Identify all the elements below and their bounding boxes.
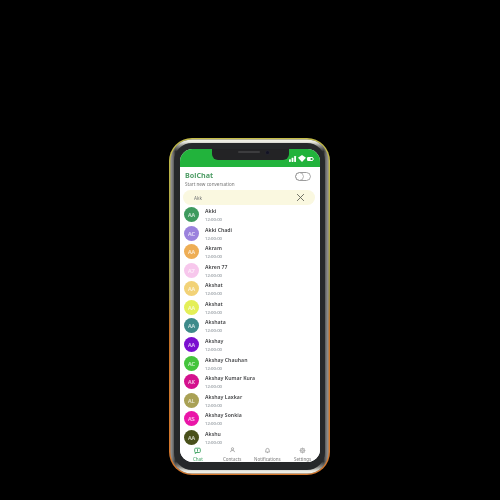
button[interactable]: AA <box>180 335 320 354</box>
button[interactable]: AC <box>180 224 320 243</box>
staticText: Akki Chadi <box>205 227 233 234</box>
button[interactable]: AA <box>180 316 320 335</box>
staticText: AL <box>188 397 195 405</box>
staticText: Contacts <box>223 456 242 462</box>
staticText: Akshay Laxkar <box>205 394 243 401</box>
staticText: Chat <box>193 456 203 462</box>
staticText: 12:00:00 <box>205 420 223 426</box>
button[interactable]: AK <box>180 372 320 391</box>
staticText: 12:00:00 <box>205 402 223 408</box>
staticText: Akshay Chauhan <box>205 357 248 364</box>
staticText: 12:00:00 <box>205 235 223 241</box>
staticText: Akki <box>205 208 217 215</box>
staticText: Akshay <box>205 338 224 345</box>
staticText: Akram <box>205 245 222 252</box>
button[interactable]: Akk <box>183 190 315 205</box>
staticText: 12:00:00 <box>205 253 223 259</box>
staticText: AA <box>188 211 196 219</box>
staticText: AK <box>188 378 196 386</box>
staticText: 12:00:00 <box>205 309 223 315</box>
staticText: 12:00:00 <box>205 439 223 445</box>
button[interactable]: AA <box>180 279 320 298</box>
staticText: Akshata <box>205 319 226 326</box>
staticText: AA <box>188 248 196 256</box>
staticText: Akk <box>194 195 202 201</box>
staticText: Akshay Sonkia <box>205 412 242 419</box>
button[interactable]: AS <box>180 409 320 428</box>
staticText: 12:00:00 <box>205 365 223 371</box>
staticText: AC <box>188 230 195 238</box>
staticText: Akren 77 <box>205 264 228 271</box>
button[interactable]: Contacts <box>215 445 250 462</box>
staticText: BolChat <box>185 170 214 180</box>
button[interactable]: Settings <box>285 445 320 462</box>
button[interactable]: Chat <box>180 445 215 462</box>
staticText: Notifications <box>254 456 281 462</box>
button[interactable]: Notifications <box>250 445 285 462</box>
staticText: 12:00:00 <box>205 327 223 333</box>
button[interactable]: Clear search <box>297 194 304 201</box>
staticText: Akshay Kumar Kura <box>205 375 256 382</box>
button[interactable]: AC <box>180 354 320 373</box>
button[interactable]: A7 <box>180 261 320 280</box>
button[interactable]: AA <box>180 205 320 224</box>
button[interactable]: AL <box>180 391 320 410</box>
staticText: 12:00:00 <box>205 216 223 222</box>
staticText: AA <box>188 341 196 349</box>
staticText: Start new conversation <box>185 181 235 187</box>
button[interactable]: Toggle dark mode <box>295 172 311 181</box>
staticText: AC <box>188 360 195 368</box>
staticText: 12:00:00 <box>205 346 223 352</box>
staticText: A7 <box>188 267 195 275</box>
staticText: AS <box>188 415 195 423</box>
staticText: Akshu <box>205 431 221 438</box>
staticText: 12:00:00 <box>205 290 223 296</box>
button[interactable]: AA <box>180 428 320 445</box>
button[interactable]: AA <box>180 242 320 261</box>
button[interactable]: AA <box>180 298 320 317</box>
staticText: 12:00:00 <box>205 272 223 278</box>
staticText: 12:00:00 <box>205 383 223 389</box>
staticText: Akshat <box>205 301 223 308</box>
staticText: Akshat <box>205 282 223 289</box>
staticText: AA <box>188 322 196 330</box>
staticText: AA <box>188 285 196 293</box>
staticText: Settings <box>294 456 312 462</box>
staticText: AA <box>188 304 196 312</box>
staticText: AA <box>188 434 196 442</box>
